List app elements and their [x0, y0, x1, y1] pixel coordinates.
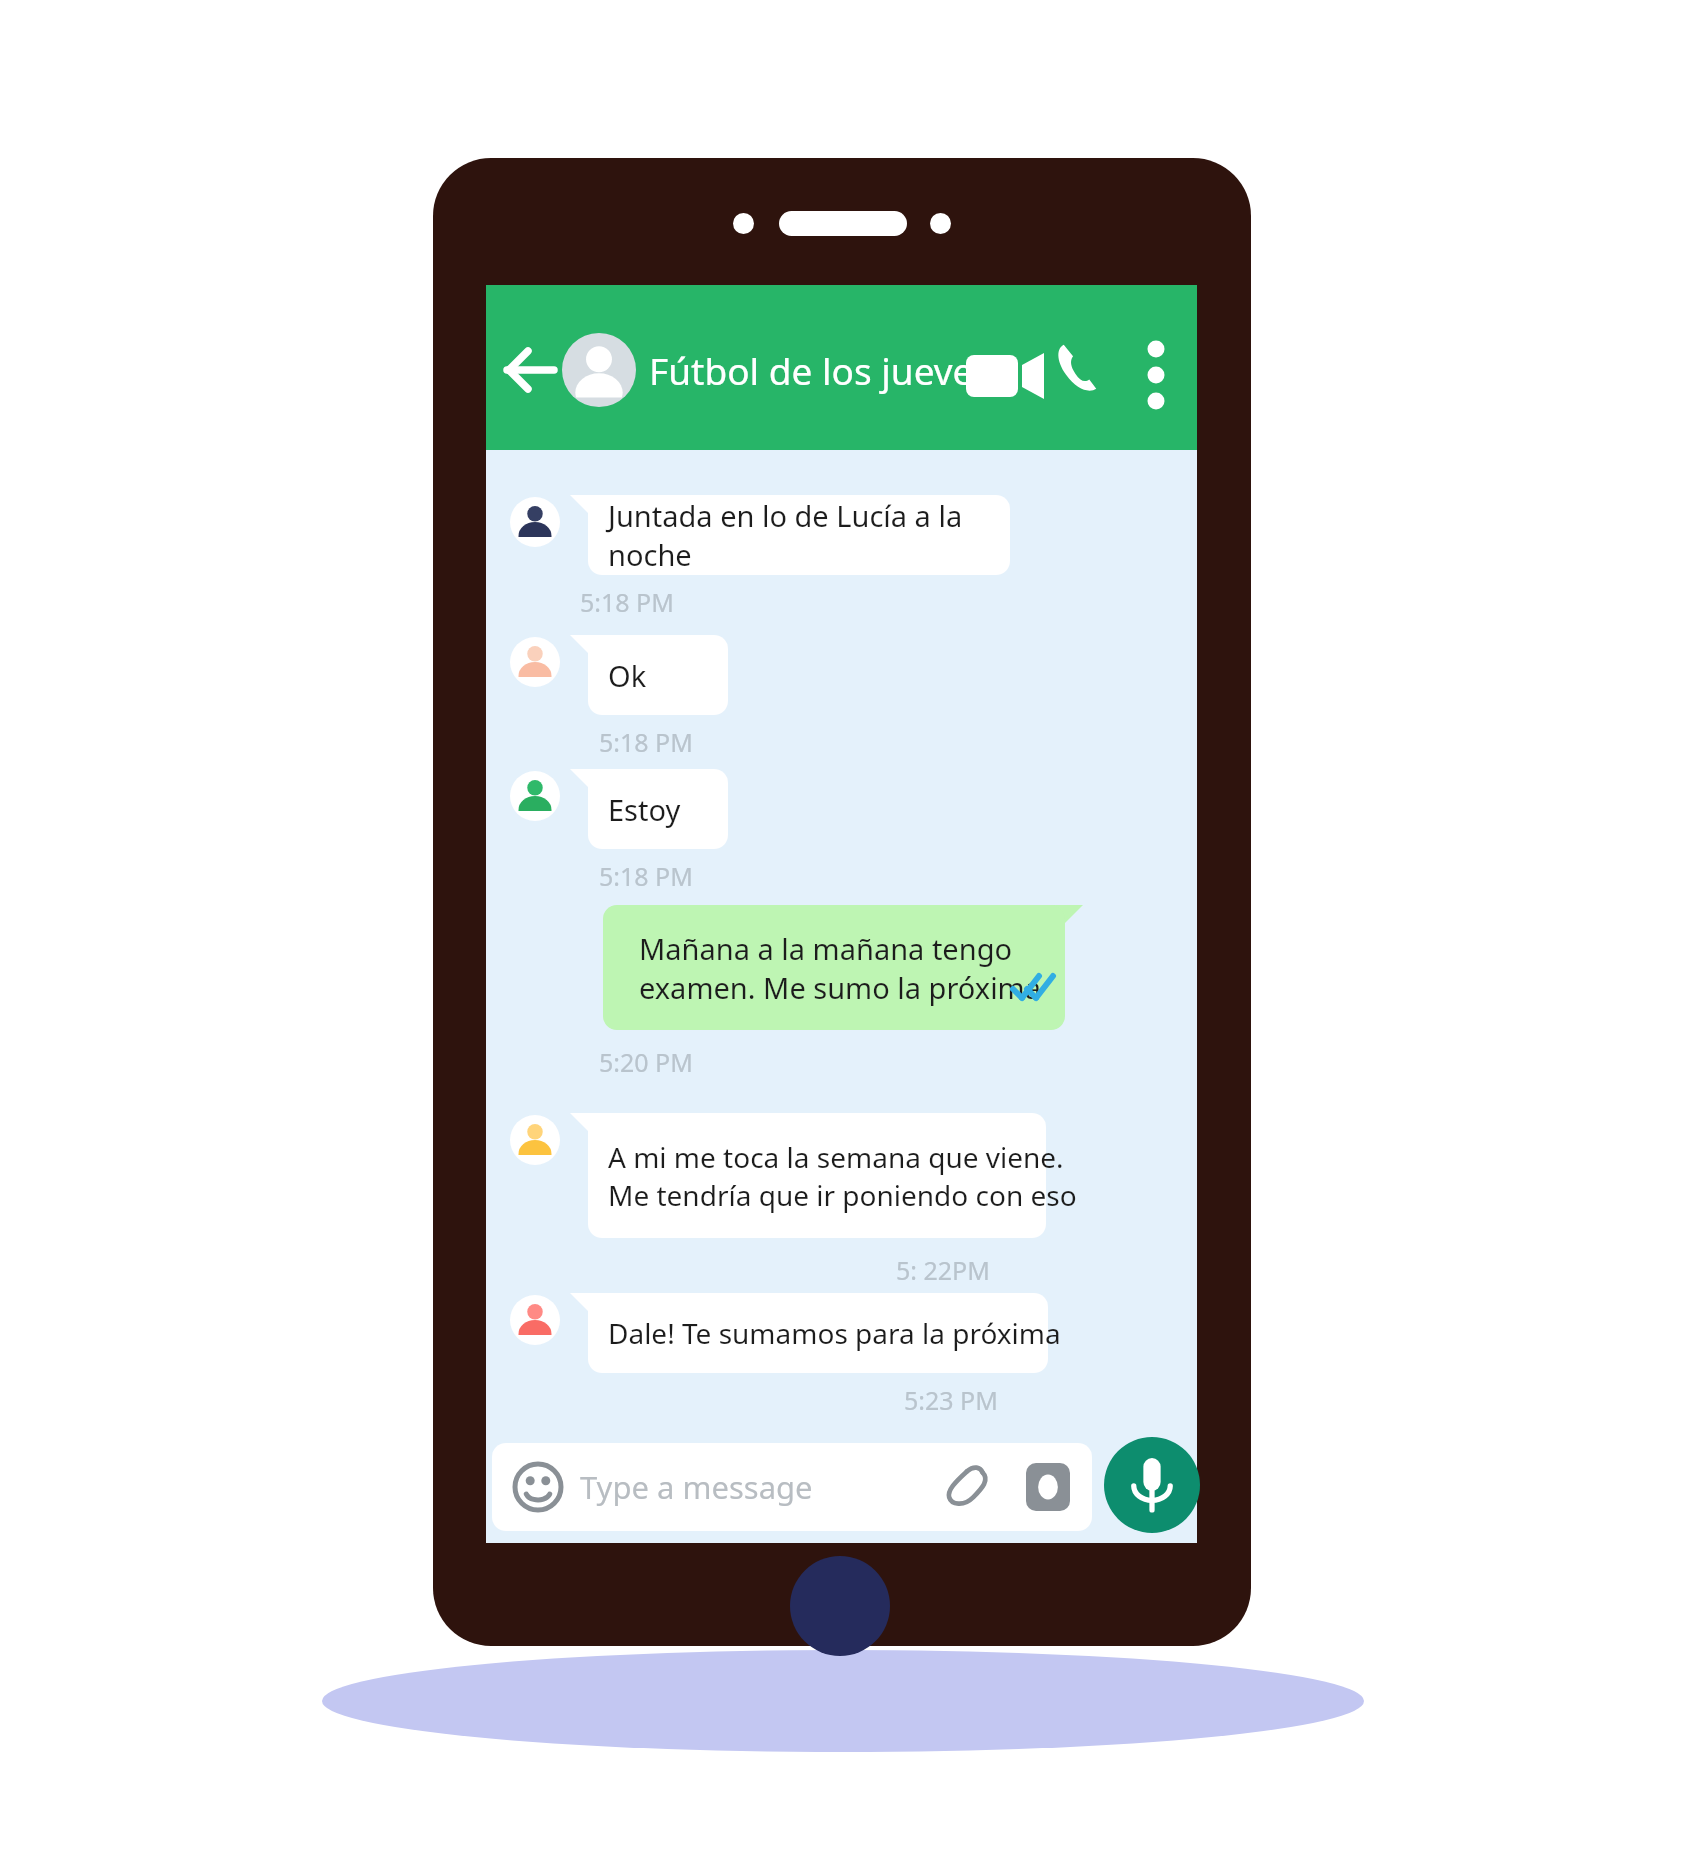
staticText: 5:18 PM — [580, 585, 674, 619]
button[interactable]: Estoy — [570, 769, 728, 849]
staticText: examen. Me sumo la próxima — [639, 968, 1041, 1007]
button[interactable]: Profile photo — [562, 333, 636, 407]
staticText: Juntada en lo de Lucía a la noche — [608, 496, 1048, 574]
button[interactable]: Camera — [1022, 1461, 1074, 1513]
button[interactable]: Type a message — [492, 1443, 1092, 1531]
staticText: 5: 22PM — [896, 1253, 990, 1287]
staticText: Type a message — [580, 1466, 813, 1508]
button[interactable]: Voice call — [1051, 340, 1109, 398]
staticText: Dale! Te sumamos para la próxima — [608, 1314, 1061, 1352]
button[interactable]: Attach — [944, 1461, 996, 1513]
staticText: 5:20 PM — [599, 1045, 693, 1079]
button[interactable]: Fútbol de los jueves — [649, 345, 992, 395]
button[interactable]: A mi me toca la semana que viene. — [570, 1113, 1046, 1238]
staticText: Mañana a la mañana tengo — [639, 929, 1013, 968]
button[interactable]: Mañana a la mañana tengo — [603, 905, 1083, 1030]
button[interactable]: Video call — [964, 345, 1026, 395]
staticText: Estoy — [608, 790, 681, 829]
button[interactable]: Ok — [570, 635, 728, 715]
button[interactable]: Juntada en lo de Lucía a la noche — [570, 495, 1010, 575]
staticText: A mi me toca la semana que viene. — [608, 1138, 1064, 1176]
button[interactable]: Dale! Te sumamos para la próxima — [570, 1293, 1048, 1373]
staticText: Me tendría que ir poniendo con eso — [608, 1176, 1077, 1214]
staticText: Ok — [608, 656, 647, 695]
staticText: 5:18 PM — [599, 725, 693, 759]
button[interactable]: More options — [1132, 337, 1180, 399]
button[interactable]: Record voice message — [1104, 1437, 1200, 1533]
button[interactable]: Back — [500, 339, 562, 401]
staticText: 5:23 PM — [904, 1383, 998, 1417]
staticText: 5:18 PM — [599, 859, 693, 893]
